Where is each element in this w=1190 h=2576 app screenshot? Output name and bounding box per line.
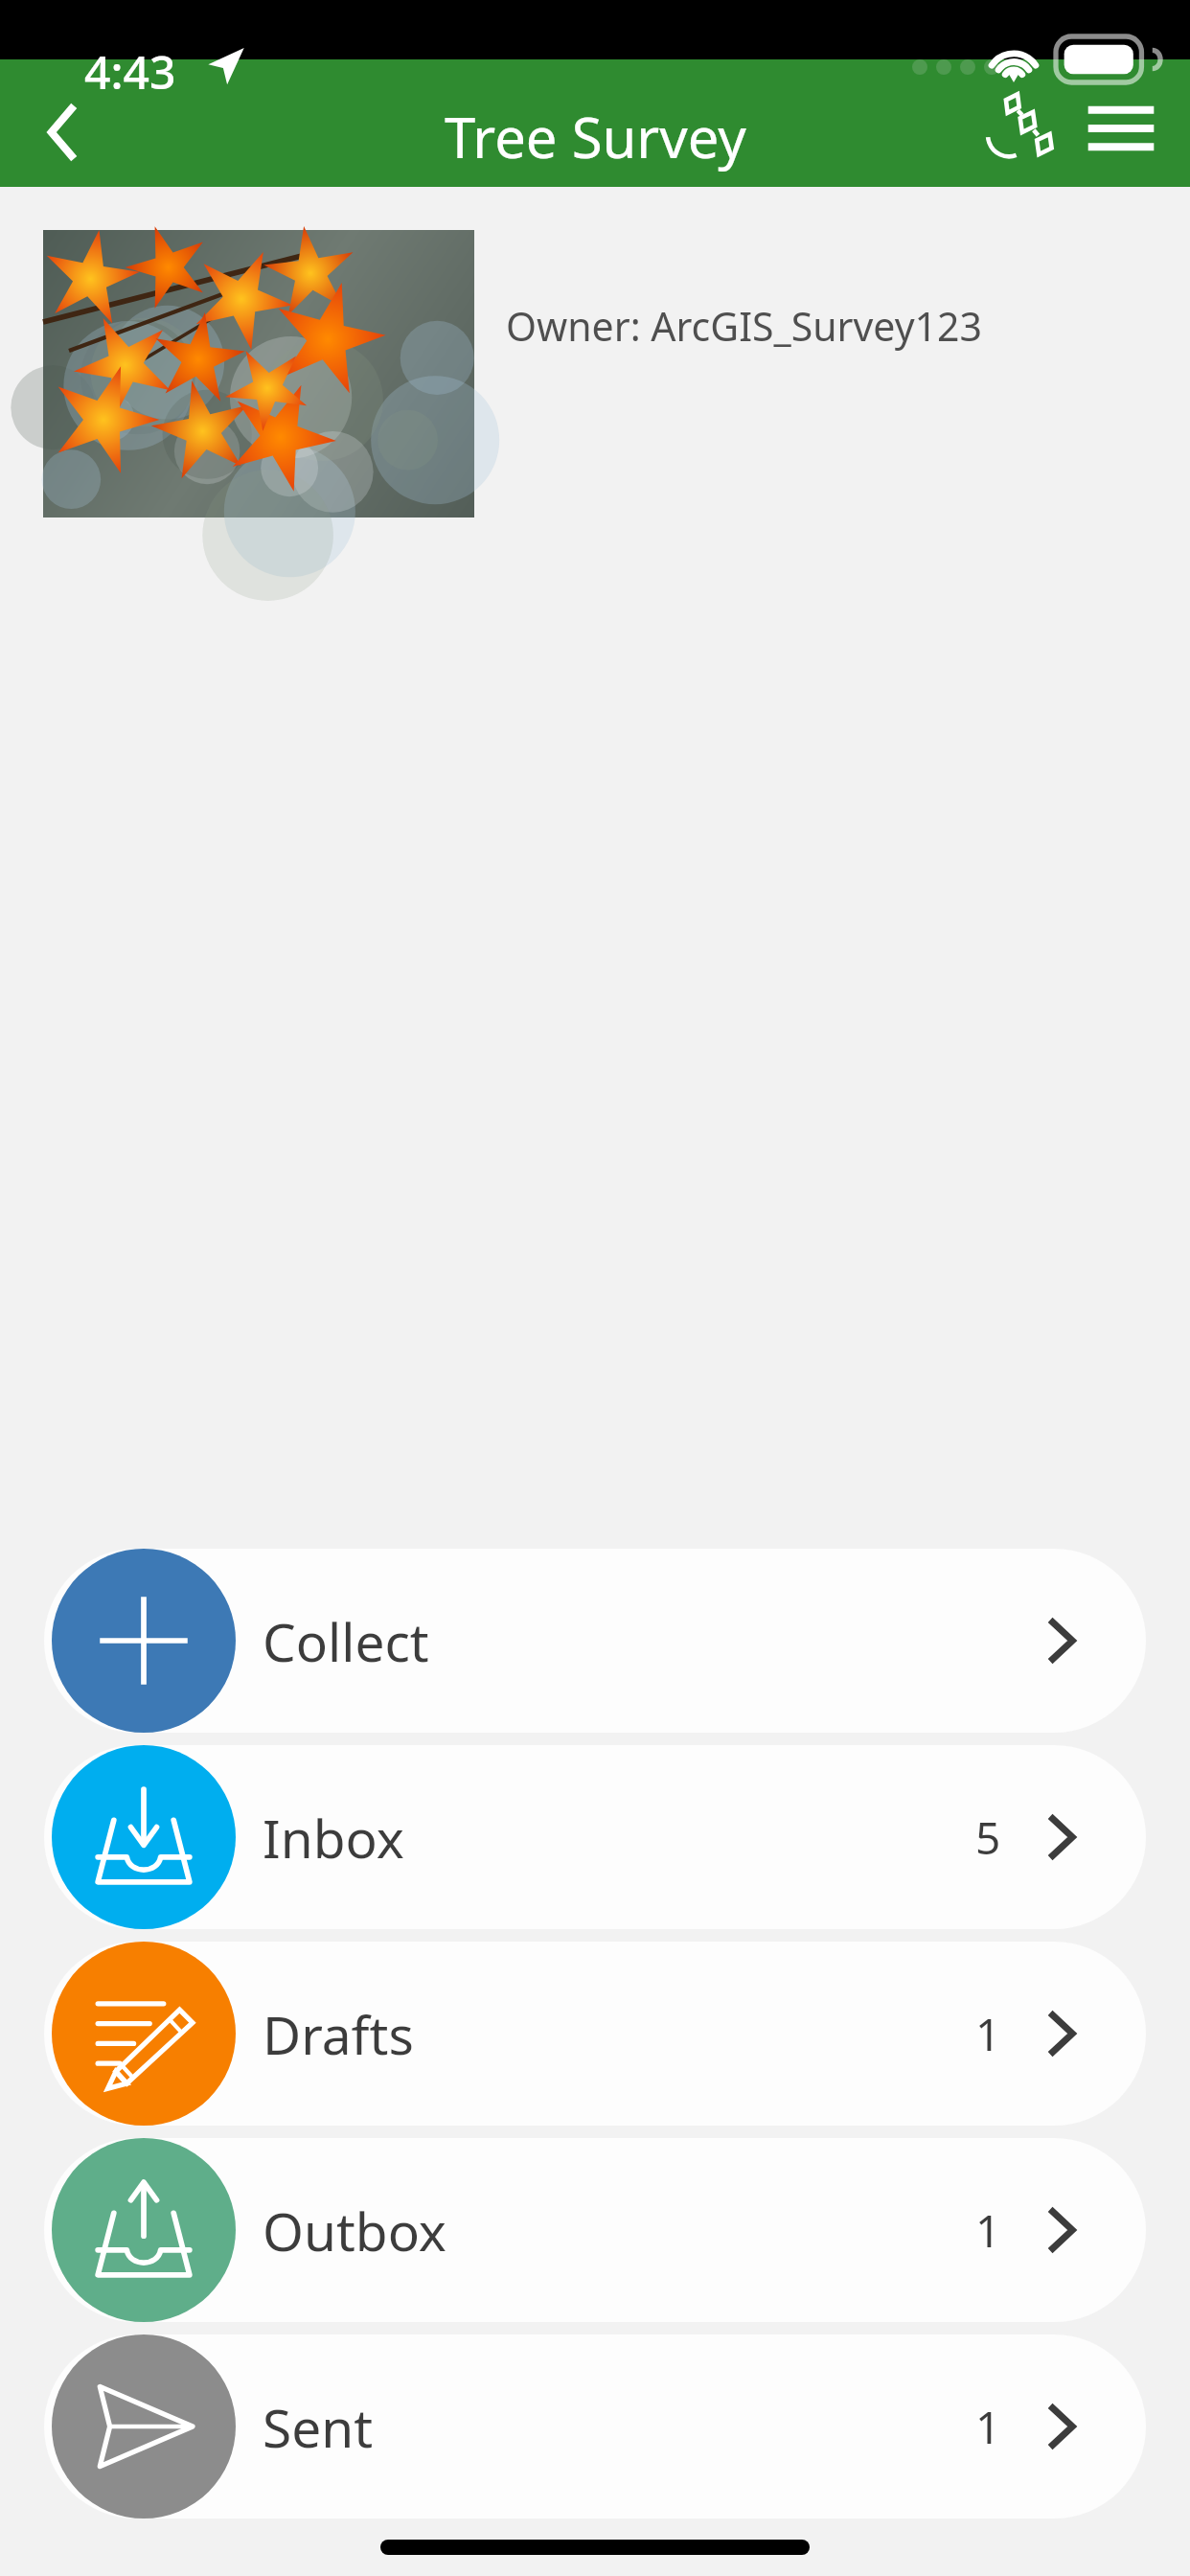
button[interactable]: Inbox <box>44 1745 1146 1929</box>
staticText: 5 <box>975 1807 1001 1868</box>
button[interactable]: Back <box>17 88 105 176</box>
staticText: Inbox <box>263 1802 404 1874</box>
staticText: Drafts <box>263 1998 414 2070</box>
button[interactable]: Drafts <box>44 1942 1146 2126</box>
staticText: Owner: ArcGIS_Survey123 <box>506 299 982 353</box>
staticText: 4:43 <box>84 40 176 103</box>
button[interactable]: Collect <box>44 1549 1146 1733</box>
staticText: 1 <box>975 2004 1001 2064</box>
staticText: Sent <box>263 2391 374 2463</box>
button[interactable]: GPS status <box>977 82 1065 171</box>
button[interactable]: Sent <box>44 2334 1146 2518</box>
staticText: Tree Survey <box>445 99 746 174</box>
staticText: Collect <box>263 1605 429 1677</box>
button[interactable]: Outbox <box>44 2138 1146 2322</box>
staticText: 1 <box>975 2397 1001 2457</box>
button[interactable]: Menu <box>1079 86 1163 171</box>
staticText: 1 <box>975 2200 1001 2261</box>
staticText: Outbox <box>263 2195 446 2266</box>
